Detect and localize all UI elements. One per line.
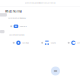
staticText: a centered caption line of text at the t… bbox=[24, 2, 55, 4]
staticText: customize your look bbox=[8, 34, 24, 36]
button[interactable]: Camera bbox=[10, 24, 27, 29]
staticText: What's Normal bbox=[5, 10, 22, 13]
staticText: Sync bbox=[77, 42, 80, 44]
button[interactable]: Sync bbox=[68, 40, 80, 45]
button[interactable]: Settings bbox=[13, 40, 29, 45]
button[interactable]: Sound bbox=[41, 40, 56, 45]
staticText: Settings bbox=[22, 42, 29, 44]
staticText: record something new bbox=[7, 17, 25, 19]
staticText: Camera bbox=[20, 25, 27, 27]
button[interactable]: Profile bbox=[50, 66, 60, 76]
